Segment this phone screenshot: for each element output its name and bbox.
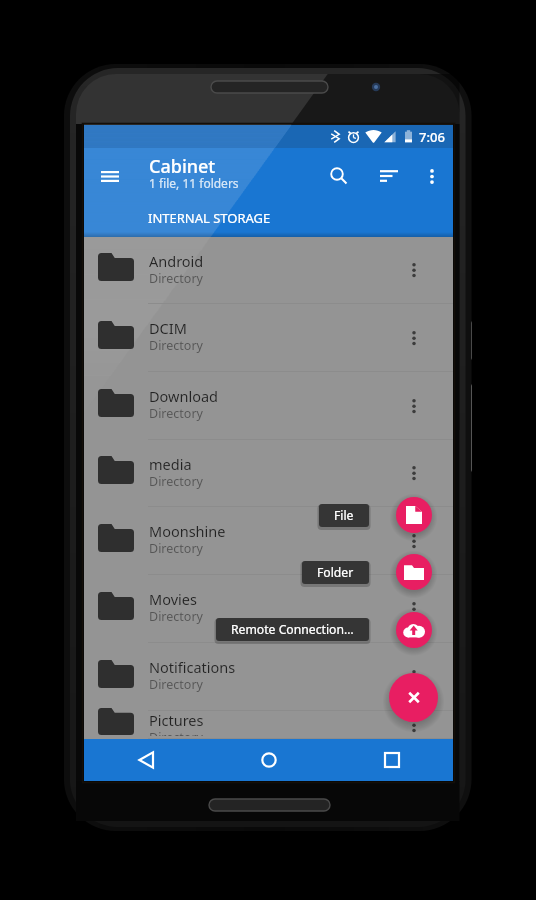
staticText: 1 file, 11 folders xyxy=(149,175,239,191)
button[interactable]: Close actions menu xyxy=(389,673,438,722)
button[interactable]: DCIM xyxy=(84,304,453,371)
staticText: 7:06 xyxy=(419,128,445,146)
staticText: DCIM xyxy=(149,318,187,338)
staticText: Directory xyxy=(149,270,203,287)
button[interactable]: Sort xyxy=(367,154,411,198)
staticText: Notifications xyxy=(149,657,236,677)
button[interactable]: More options for media xyxy=(392,451,436,495)
button[interactable]: Android xyxy=(84,237,453,303)
button[interactable]: More options for Android xyxy=(392,248,436,292)
button[interactable]: Search xyxy=(317,154,361,198)
button[interactable]: More options for Notifications xyxy=(392,655,436,699)
button[interactable]: Open navigation drawer xyxy=(88,154,132,198)
button[interactable]: More options for Download xyxy=(392,384,436,428)
staticText: Directory xyxy=(149,608,203,625)
staticText: Cabinet xyxy=(149,154,216,179)
staticText: Directory xyxy=(149,473,203,490)
button[interactable]: More options for Movies xyxy=(392,587,436,631)
button[interactable]: Folder xyxy=(302,561,369,584)
button[interactable]: Recent apps xyxy=(330,739,453,781)
staticText: File xyxy=(334,507,354,524)
button[interactable]: Pictures xyxy=(84,711,453,738)
button[interactable]: Moonshine xyxy=(84,507,453,574)
staticText: Folder xyxy=(317,564,354,581)
staticText: Directory xyxy=(149,540,203,557)
button[interactable]: Notifications xyxy=(84,643,453,710)
button[interactable]: More options for Pictures xyxy=(392,711,436,738)
button[interactable]: More options for Moonshine xyxy=(392,519,436,563)
button[interactable]: File xyxy=(396,497,432,533)
button[interactable]: Folder xyxy=(396,554,432,590)
staticText: media xyxy=(149,454,192,474)
staticText: Directory xyxy=(149,337,203,354)
button[interactable]: Download xyxy=(84,372,453,439)
button[interactable]: Back xyxy=(84,739,207,781)
button[interactable]: File xyxy=(319,504,369,527)
staticText: Directory xyxy=(149,676,203,693)
button[interactable]: Home xyxy=(207,739,330,781)
staticText: Android xyxy=(149,251,204,271)
button[interactable]: Remote Connection… xyxy=(396,612,432,648)
button[interactable]: More options xyxy=(412,156,452,196)
staticText: Moonshine xyxy=(149,521,226,541)
staticText: Directory xyxy=(149,729,203,736)
staticText: Download xyxy=(149,386,218,406)
button[interactable]: INTERNAL STORAGE xyxy=(84,204,453,237)
button[interactable]: More options for DCIM xyxy=(392,316,436,360)
button[interactable]: media xyxy=(84,440,453,506)
staticText: Remote Connection… xyxy=(231,621,354,638)
button[interactable]: Movies xyxy=(84,575,453,642)
staticText: Movies xyxy=(149,589,197,609)
button[interactable]: Remote Connection… xyxy=(216,618,369,641)
staticText: Pictures xyxy=(149,710,204,730)
staticText: INTERNAL STORAGE xyxy=(148,209,271,227)
staticText: Directory xyxy=(149,405,203,422)
